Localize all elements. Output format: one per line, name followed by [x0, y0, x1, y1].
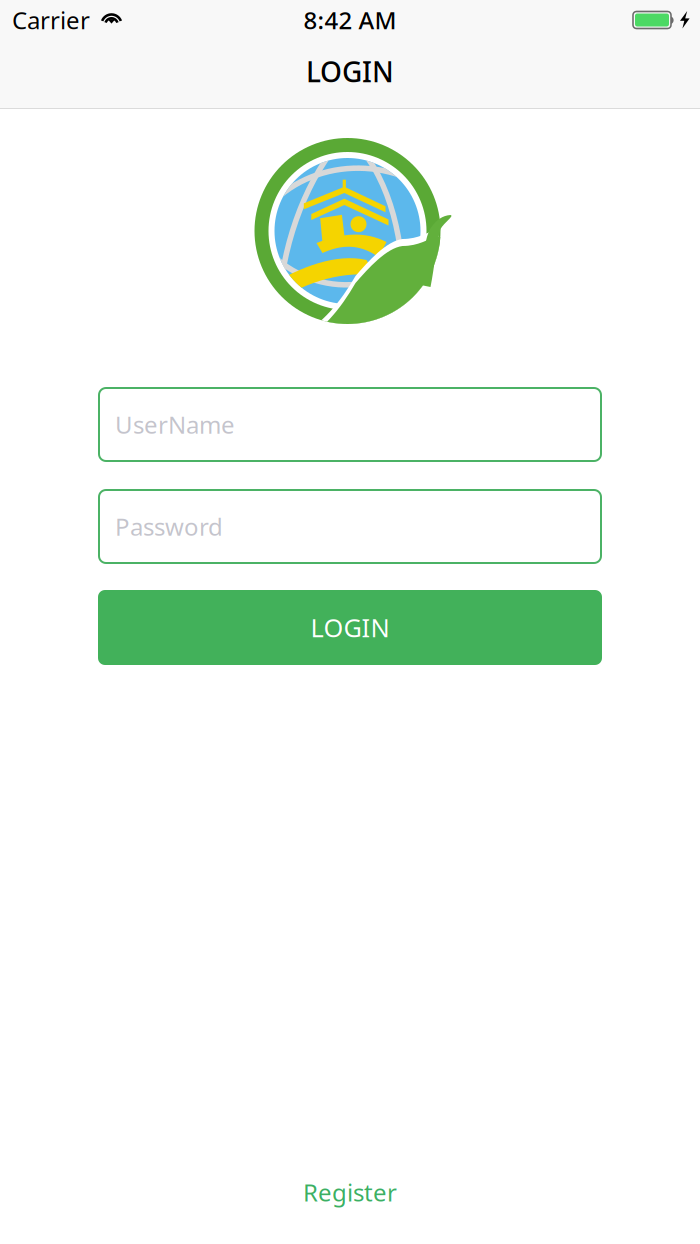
- staticText: Password: [115, 511, 223, 542]
- staticText: UserName: [115, 409, 235, 440]
- button[interactable]: Register: [303, 1176, 397, 1208]
- button[interactable]: LOGIN: [98, 590, 602, 665]
- staticText: LOGIN: [306, 53, 394, 90]
- staticText: LOGIN: [310, 611, 389, 644]
- staticText: Register: [303, 1176, 397, 1208]
- staticText: 8:42 AM: [303, 4, 396, 36]
- staticText: Carrier: [12, 4, 90, 36]
